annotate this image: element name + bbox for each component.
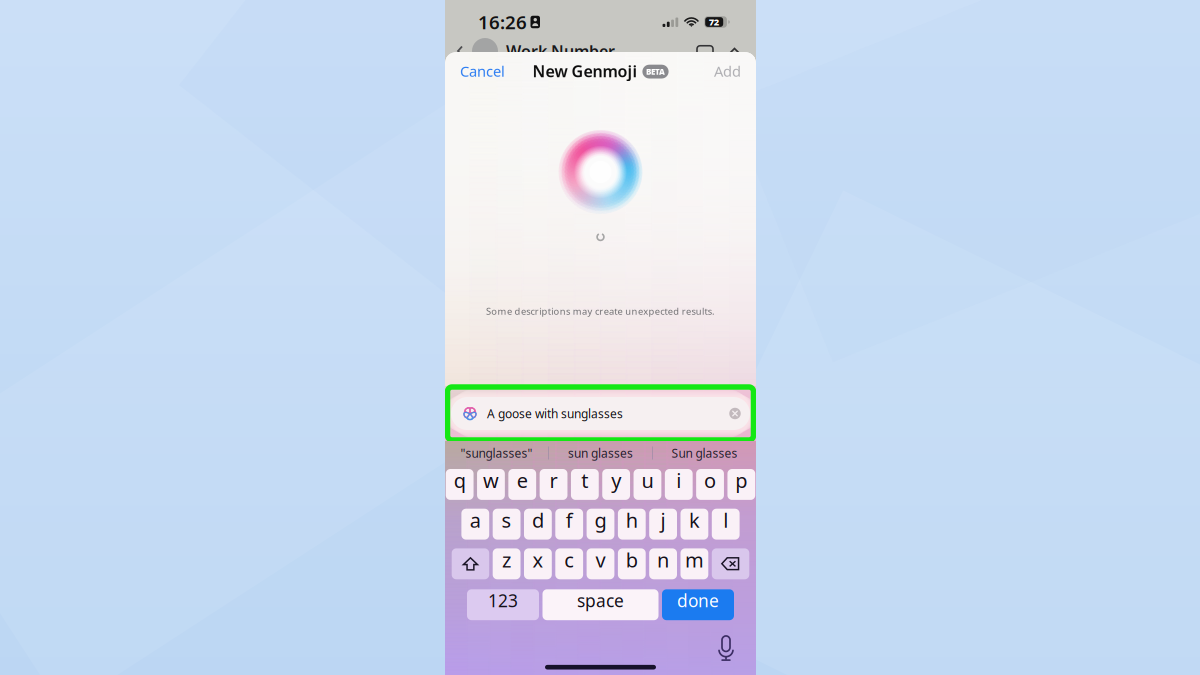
- button[interactable]: t: [571, 469, 599, 500]
- button[interactable]: e: [508, 469, 536, 500]
- staticText: q: [454, 467, 466, 494]
- staticText: j: [661, 507, 666, 533]
- button[interactable]: d: [524, 509, 552, 540]
- staticText: m: [685, 546, 704, 573]
- button[interactable]: j: [649, 509, 677, 540]
- staticText: n: [657, 546, 669, 573]
- staticText: y: [611, 467, 621, 494]
- staticText: x: [532, 546, 543, 573]
- staticText: Cancel: [460, 61, 505, 81]
- button[interactable]: g: [587, 509, 614, 540]
- button[interactable]: z: [493, 548, 520, 579]
- staticText: 16:26: [478, 10, 527, 34]
- staticText: space: [577, 589, 624, 612]
- button[interactable]: done: [662, 589, 734, 620]
- staticText: 123: [488, 589, 518, 612]
- staticText: o: [704, 467, 716, 494]
- button[interactable]: k: [680, 509, 708, 540]
- staticText: w: [483, 467, 499, 494]
- staticText: g: [594, 507, 606, 533]
- button[interactable]: m: [680, 548, 708, 579]
- staticText: Add: [714, 61, 741, 81]
- button[interactable]: p: [727, 469, 755, 500]
- button[interactable]: y: [602, 469, 630, 500]
- button[interactable]: b: [618, 548, 646, 579]
- staticText: Some descriptions may create unexpected …: [486, 305, 715, 317]
- staticText: a: [470, 507, 481, 533]
- button[interactable]: c: [555, 548, 583, 579]
- button[interactable]: 123: [467, 589, 539, 620]
- staticText: b: [626, 546, 638, 573]
- staticText: BETA: [646, 66, 665, 77]
- button[interactable]: w: [477, 469, 505, 500]
- staticText: r: [549, 467, 557, 494]
- staticText: t: [581, 467, 588, 494]
- staticText: i: [676, 467, 681, 494]
- button[interactable]: x: [524, 548, 552, 579]
- staticText: sun glasses: [568, 445, 633, 461]
- staticText: l: [723, 507, 728, 533]
- staticText: New Genmoji: [532, 60, 637, 82]
- button[interactable]: Add: [684, 52, 756, 90]
- staticText: p: [735, 467, 747, 494]
- staticText: f: [566, 507, 573, 533]
- button[interactable]: Cancel: [445, 52, 517, 90]
- button[interactable]: "sunglasses": [445, 441, 548, 465]
- button[interactable]: n: [649, 548, 677, 579]
- staticText: e: [517, 467, 528, 494]
- button[interactable]: s: [493, 509, 520, 540]
- staticText: k: [689, 507, 700, 533]
- button[interactable]: Delete: [712, 548, 749, 579]
- button[interactable]: Shift: [452, 548, 489, 579]
- staticText: A goose with sunglasses: [487, 405, 623, 421]
- staticText: "sunglasses": [461, 445, 533, 461]
- button[interactable]: r: [540, 469, 567, 500]
- button[interactable]: q: [446, 469, 474, 500]
- staticText: h: [626, 507, 638, 533]
- button[interactable]: Sun glasses: [653, 441, 756, 465]
- staticText: z: [502, 546, 511, 573]
- staticText: c: [564, 546, 574, 573]
- staticText: done: [677, 589, 719, 612]
- staticText: s: [502, 507, 512, 533]
- button[interactable]: o: [696, 469, 724, 500]
- button[interactable]: space: [542, 589, 658, 620]
- staticText: d: [532, 507, 544, 533]
- button[interactable]: u: [633, 469, 661, 500]
- button[interactable]: i: [665, 469, 693, 500]
- button[interactable]: a: [461, 509, 489, 540]
- button[interactable]: h: [618, 509, 646, 540]
- button[interactable]: Clear text: [726, 404, 744, 422]
- staticText: Work Number: [506, 40, 615, 62]
- staticText: 72: [709, 16, 719, 28]
- staticText: v: [595, 546, 605, 573]
- button[interactable]: l: [712, 509, 740, 540]
- button[interactable]: v: [587, 548, 614, 579]
- button[interactable]: Dictate: [717, 634, 735, 661]
- staticText: u: [641, 467, 653, 494]
- staticText: Sun glasses: [671, 445, 737, 461]
- button[interactable]: sun glasses: [549, 441, 652, 465]
- button[interactable]: f: [555, 509, 583, 540]
